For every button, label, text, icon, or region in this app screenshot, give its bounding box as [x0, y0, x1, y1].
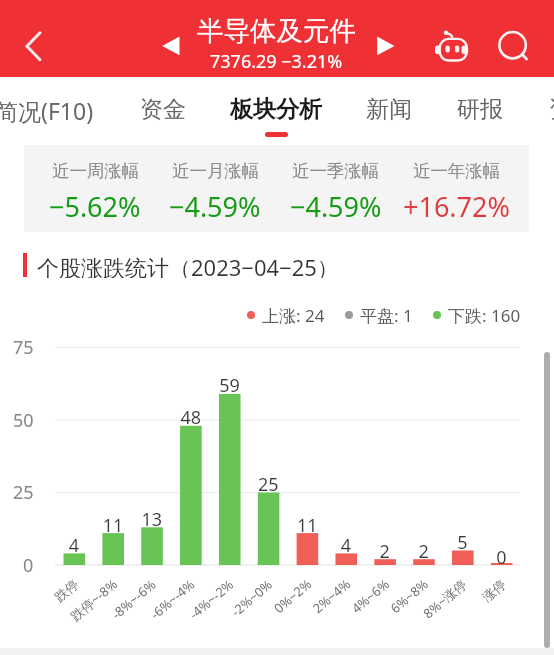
button[interactable]: 近一月涨幅	[155, 145, 275, 232]
button[interactable]: Search	[490, 22, 536, 68]
button[interactable]: 板块分析	[208, 77, 344, 142]
button[interactable]: 研报	[435, 77, 525, 142]
button[interactable]: 近一季涨幅	[275, 145, 396, 232]
button[interactable]: Next sector	[371, 31, 401, 61]
staticText: 个股涨跌统计（2023−04−25）	[37, 252, 339, 278]
staticText: −4.59%	[169, 188, 261, 225]
staticText: +16.72%	[403, 188, 510, 225]
button[interactable]: 资金	[119, 77, 207, 142]
staticText: 上涨: 24	[262, 304, 325, 326]
staticText: −4.59%	[290, 188, 382, 225]
staticText: 近一年涨幅	[413, 160, 500, 182]
staticText: 资金	[140, 95, 186, 124]
button[interactable]: 近一年涨幅	[396, 145, 517, 232]
button[interactable]: 新闻	[344, 77, 434, 142]
staticText: 研报	[457, 95, 503, 124]
staticText: 半导体及元件	[197, 14, 356, 47]
staticText: 平盘: 1	[360, 304, 413, 326]
staticText: 新闻	[366, 95, 412, 124]
button[interactable]: 资	[526, 77, 554, 142]
staticText: 下跌: 160	[448, 304, 521, 326]
button[interactable]: Back	[6, 19, 60, 73]
staticText: 近一季涨幅	[292, 160, 379, 182]
button[interactable]: 近一周涨幅	[35, 145, 155, 232]
staticText: 简况(F10)	[0, 95, 94, 126]
staticText: 近一月涨幅	[172, 160, 259, 182]
button[interactable]: 简况(F10)	[0, 77, 118, 142]
staticText: 资	[549, 95, 554, 124]
button[interactable]: Previous sector	[156, 31, 186, 61]
staticText: −5.62%	[49, 188, 141, 225]
staticText: 7376.29 −3.21%	[210, 49, 343, 74]
button[interactable]: AI assistant	[428, 21, 474, 67]
staticText: 板块分析	[230, 95, 322, 124]
staticText: 近一周涨幅	[52, 160, 139, 182]
